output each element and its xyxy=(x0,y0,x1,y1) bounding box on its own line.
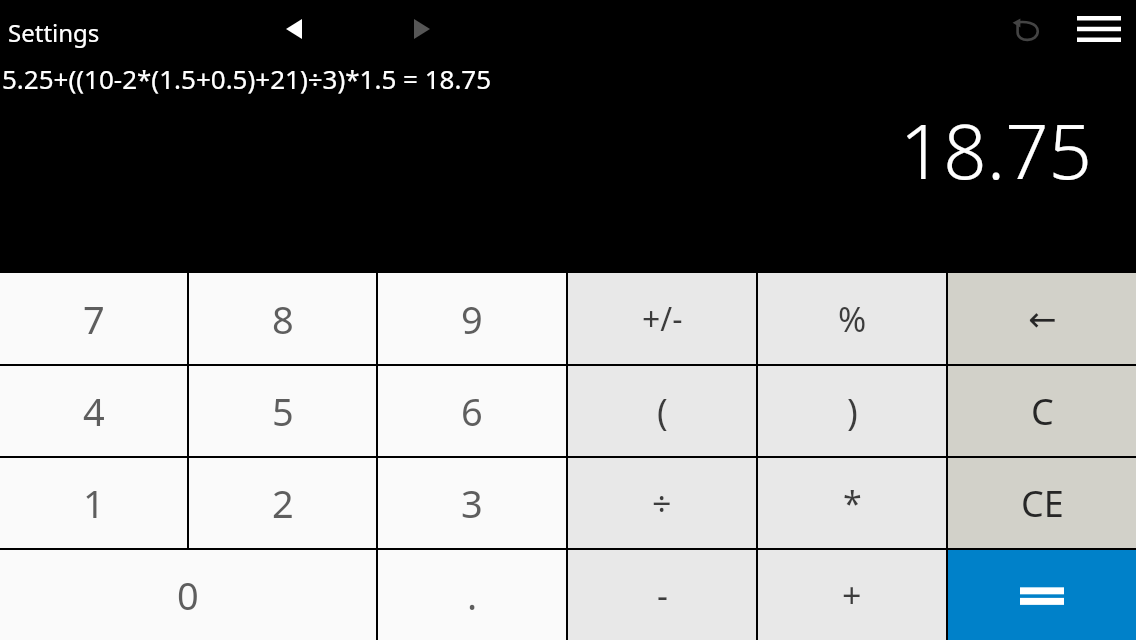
staticText: Settings xyxy=(8,16,100,49)
button[interactable]: ÷ xyxy=(568,458,756,548)
staticText: CE xyxy=(1021,479,1064,528)
staticText: * xyxy=(843,480,862,526)
button[interactable]: Backspace xyxy=(948,273,1136,364)
staticText: - xyxy=(657,572,668,618)
staticText: 6 xyxy=(461,385,483,437)
button[interactable]: Settings xyxy=(8,16,100,49)
staticText: 2 xyxy=(272,477,294,529)
button[interactable]: - xyxy=(568,550,756,640)
staticText: 0 xyxy=(177,569,199,621)
staticText: 3 xyxy=(461,477,483,529)
staticText: 18.75 xyxy=(899,98,1092,202)
button[interactable]: 8 xyxy=(189,273,376,364)
staticText: ÷ xyxy=(652,480,672,526)
button[interactable]: 1 xyxy=(0,458,187,548)
button[interactable]: C xyxy=(948,366,1136,456)
button[interactable]: ( xyxy=(568,366,756,456)
button[interactable]: 0 xyxy=(0,550,376,640)
button[interactable]: ) xyxy=(758,366,946,456)
button[interactable]: 6 xyxy=(378,366,566,456)
staticText: 7 xyxy=(83,293,105,345)
button[interactable]: 2 xyxy=(189,458,376,548)
button[interactable]: * xyxy=(758,458,946,548)
staticText: 4 xyxy=(83,385,105,437)
button[interactable]: + xyxy=(758,550,946,640)
button[interactable]: 9 xyxy=(378,273,566,364)
button[interactable]: Equals xyxy=(948,550,1136,640)
staticText: % xyxy=(838,296,867,342)
staticText: +/- xyxy=(642,297,683,341)
staticText: 5 xyxy=(272,385,294,437)
staticText: . xyxy=(467,569,478,621)
button[interactable]: % xyxy=(758,273,946,364)
button[interactable]: 4 xyxy=(0,366,187,456)
staticText: 1 xyxy=(83,477,105,529)
button[interactable]: Previous expression xyxy=(276,12,312,46)
button[interactable]: CE xyxy=(948,458,1136,548)
button[interactable]: Menu xyxy=(1072,8,1126,50)
button[interactable]: Next expression xyxy=(404,12,440,46)
staticText: ) xyxy=(847,387,858,436)
button[interactable]: 5 xyxy=(189,366,376,456)
button[interactable]: . xyxy=(378,550,566,640)
staticText: 8 xyxy=(272,293,294,345)
staticText: C xyxy=(1031,387,1054,436)
button[interactable]: 7 xyxy=(0,273,187,364)
button[interactable]: 3 xyxy=(378,458,566,548)
button[interactable]: Undo xyxy=(1004,10,1048,50)
staticText: ← xyxy=(1028,299,1057,339)
staticText: 9 xyxy=(461,293,483,345)
staticText: 5.25+((10-2*(1.5+0.5)+21)÷3)*1.5 = 18.75 xyxy=(2,61,492,96)
staticText: ( xyxy=(657,387,668,436)
staticText: + xyxy=(842,572,862,618)
button[interactable]: +/- xyxy=(568,273,756,364)
